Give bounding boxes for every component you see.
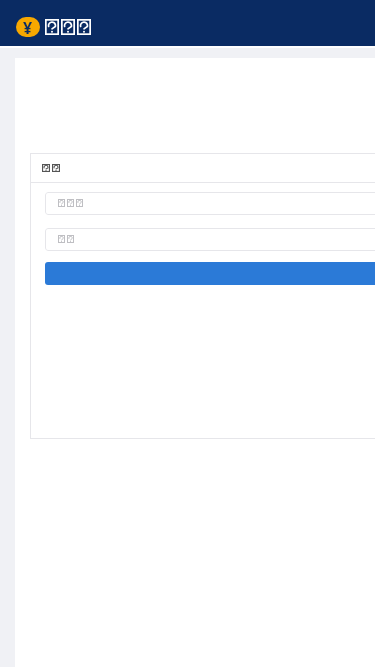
button[interactable]: User name <box>45 192 375 215</box>
staticText: ¥ <box>23 17 33 37</box>
button[interactable]: Sign in <box>45 262 375 285</box>
button[interactable]: Home <box>16 17 91 37</box>
button[interactable]: Password <box>45 228 375 251</box>
